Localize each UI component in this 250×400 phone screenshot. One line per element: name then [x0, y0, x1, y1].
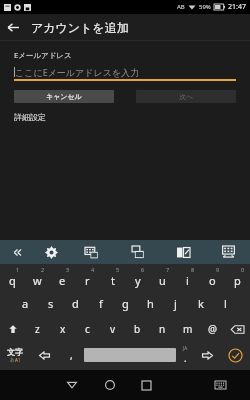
staticText: v	[110, 322, 116, 336]
staticText: JA	[183, 345, 188, 351]
button[interactable]: Cursor right	[194, 342, 220, 368]
staticText: ここにEメールアドレスを入力	[15, 66, 140, 78]
button[interactable]: h	[138, 290, 163, 316]
button[interactable]: j	[163, 290, 188, 316]
button[interactable]: 文字	[0, 342, 30, 368]
staticText: ,	[70, 348, 73, 362]
button[interactable]: z	[25, 316, 50, 342]
staticText: e	[59, 273, 66, 288]
button[interactable]: ここにEメールアドレスを入力	[14, 65, 236, 79]
button[interactable]: Dictionary	[160, 240, 206, 264]
staticText: @	[208, 322, 217, 336]
button[interactable]: m	[175, 316, 200, 342]
staticText: AB	[177, 3, 185, 11]
staticText: d	[72, 296, 79, 311]
button[interactable]: Home	[91, 370, 128, 400]
staticText: 9	[216, 266, 220, 273]
staticText: q	[9, 273, 16, 288]
button[interactable]: ,	[58, 342, 84, 368]
button[interactable]: Keypad	[68, 240, 114, 264]
staticText: あ	[10, 357, 15, 363]
button[interactable]: Collapse	[0, 240, 34, 264]
button[interactable]: b	[125, 316, 150, 342]
staticText: p	[234, 273, 241, 288]
button[interactable]: Done	[220, 342, 250, 368]
button[interactable]: v	[100, 316, 125, 342]
staticText: 次へ	[179, 92, 194, 101]
staticText: b	[134, 322, 141, 336]
staticText: 1	[16, 266, 20, 273]
button[interactable]: Back	[53, 370, 91, 400]
button[interactable]: 4	[75, 266, 100, 290]
staticText: k	[198, 296, 204, 311]
button[interactable]: Cursor left	[30, 342, 58, 368]
staticText: c	[85, 322, 90, 336]
button[interactable]: Settings	[34, 240, 68, 264]
staticText: j	[174, 296, 177, 311]
staticText: 3	[66, 266, 70, 273]
button[interactable]: Back	[0, 14, 26, 40]
staticText: 7	[166, 266, 170, 273]
button[interactable]: 5	[100, 266, 125, 290]
staticText: s	[48, 296, 54, 311]
staticText: n	[159, 322, 166, 336]
staticText: Eメールアドレス	[14, 50, 72, 60]
staticText: x	[60, 322, 66, 336]
staticText: i	[186, 273, 189, 288]
button[interactable]: 0	[225, 266, 250, 290]
button[interactable]: 詳細設定	[14, 112, 46, 122]
staticText: .	[184, 351, 187, 365]
button[interactable]: 7	[150, 266, 175, 290]
button[interactable]: l	[213, 290, 238, 316]
staticText: 文字	[7, 347, 23, 357]
button[interactable]: @	[200, 316, 225, 342]
button[interactable]: 9	[200, 266, 225, 290]
button[interactable]: 6	[125, 266, 150, 290]
staticText: 21:47	[228, 2, 246, 12]
staticText: 詳細設定	[14, 112, 46, 122]
button[interactable]: f	[88, 290, 113, 316]
staticText: y	[135, 273, 141, 288]
staticText: 0	[241, 266, 245, 273]
staticText: o	[209, 273, 216, 288]
button[interactable]: 次へ	[136, 90, 236, 103]
staticText: 8	[191, 266, 195, 273]
button[interactable]: g	[113, 290, 138, 316]
button[interactable]: Emoji	[114, 240, 160, 264]
staticText: f	[99, 296, 103, 311]
staticText: a	[22, 296, 29, 311]
staticText: l	[224, 296, 227, 311]
staticText: 5	[116, 266, 120, 273]
staticText: アカウントを追加	[31, 20, 129, 35]
staticText: 1	[18, 357, 21, 363]
button[interactable]: Backspace	[225, 316, 250, 342]
staticText: g	[122, 296, 129, 311]
staticText: 59%	[199, 3, 211, 11]
button[interactable]: c	[75, 316, 100, 342]
button[interactable]: n	[150, 316, 175, 342]
button[interactable]: a	[12, 290, 38, 316]
button[interactable]: Shift	[0, 316, 25, 342]
staticText: u	[159, 273, 166, 288]
button[interactable]: 3	[50, 266, 75, 290]
button[interactable]: Resize	[206, 240, 250, 264]
button[interactable]: x	[50, 316, 75, 342]
staticText: 2	[41, 266, 45, 273]
button[interactable]: キャンセル	[14, 90, 114, 103]
button[interactable]: k	[188, 290, 213, 316]
staticText: キャンセル	[46, 92, 82, 101]
button[interactable]: Switch keyboard	[202, 370, 239, 400]
button[interactable]: Recents	[128, 370, 165, 400]
staticText: m	[183, 322, 193, 336]
button[interactable]: 2	[25, 266, 50, 290]
button[interactable]: 8	[175, 266, 200, 290]
staticText: h	[147, 296, 154, 311]
staticText: A	[15, 357, 18, 363]
staticText: z	[35, 322, 40, 336]
button[interactable]: s	[38, 290, 63, 316]
staticText: 4	[91, 266, 95, 273]
button[interactable]: 1	[0, 266, 25, 290]
staticText: 6	[141, 266, 145, 273]
button[interactable]: d	[63, 290, 88, 316]
